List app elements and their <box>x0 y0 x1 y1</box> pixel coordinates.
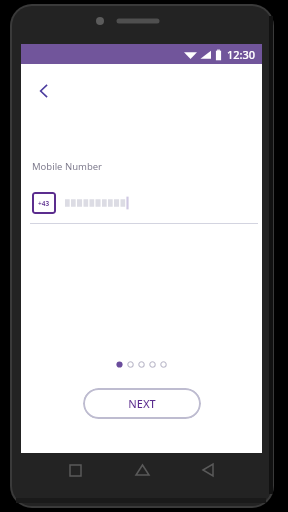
button[interactable]: Home <box>129 457 155 483</box>
button[interactable]: NEXT <box>83 388 201 419</box>
button[interactable]: Back <box>195 457 221 483</box>
staticText: +43 <box>38 199 50 208</box>
button[interactable]: Phone number field <box>65 192 139 214</box>
button[interactable]: +43 <box>32 192 56 214</box>
staticText: 12:30 <box>227 47 256 62</box>
button[interactable]: Back <box>27 74 61 108</box>
button[interactable]: Recent apps <box>62 457 88 483</box>
staticText: NEXT <box>128 396 156 411</box>
staticText: Mobile Number <box>32 160 103 173</box>
